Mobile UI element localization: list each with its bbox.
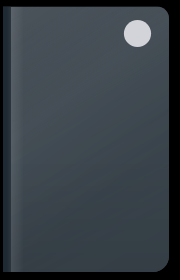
button[interactable]: Book cover [0,0,180,280]
